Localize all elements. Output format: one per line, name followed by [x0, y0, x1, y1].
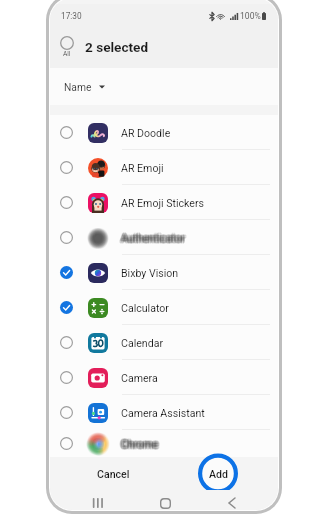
staticText: Chrome — [123, 437, 161, 449]
staticText: Chrome — [119, 437, 157, 449]
button[interactable]: Camera Assistant — [50, 395, 278, 430]
staticText: Authenticator — [121, 231, 185, 243]
button[interactable]: Add — [198, 457, 238, 490]
staticText: Camera — [121, 372, 158, 384]
button[interactable]: Calculator — [50, 290, 278, 325]
button[interactable]: AR Emoji Stickers — [50, 185, 278, 220]
staticText: Chrome — [120, 438, 158, 450]
staticText: Authenticator — [120, 234, 184, 246]
staticText: Chrome — [122, 436, 160, 448]
staticText: Chrome — [120, 439, 158, 451]
staticText: Chrome — [123, 437, 161, 449]
staticText: Authenticator — [120, 231, 184, 243]
staticText: Authenticator — [120, 232, 184, 244]
staticText: Authenticator — [121, 231, 185, 243]
staticText: Authenticator — [121, 234, 185, 246]
staticText: Authenticator — [120, 231, 184, 243]
staticText: Authenticator — [120, 233, 184, 245]
staticText: Chrome — [123, 439, 161, 451]
staticText: Authenticator — [122, 233, 186, 245]
staticText: Chrome — [119, 439, 157, 451]
staticText: Cancel — [97, 468, 130, 480]
staticText: Authenticator — [122, 232, 186, 244]
staticText: Authenticator — [120, 234, 184, 246]
staticText: All — [63, 50, 71, 58]
staticText: Chrome — [123, 438, 161, 450]
staticText: Authenticator — [119, 233, 183, 245]
staticText: Chrome — [122, 440, 160, 452]
staticText: Chrome — [120, 437, 158, 449]
button[interactable]: Cancel — [82, 460, 144, 488]
button[interactable]: AR Emoji — [50, 150, 278, 185]
button[interactable]: Bixby Vision — [50, 255, 278, 290]
staticText: Authenticator — [122, 233, 186, 245]
staticText: Authenticator — [121, 233, 185, 245]
staticText: Authenticator — [123, 233, 187, 245]
staticText: Name — [64, 81, 92, 93]
staticText: Authenticator — [122, 233, 186, 245]
staticText: Authenticator — [122, 230, 186, 242]
staticText: Chrome — [122, 440, 160, 452]
staticText: Chrome — [122, 437, 160, 449]
button[interactable]: AR Doodle — [50, 115, 278, 150]
staticText: Chrome — [119, 438, 157, 450]
staticText: Chrome — [122, 438, 160, 450]
staticText: Authenticator — [120, 232, 184, 244]
button[interactable]: Select all — [58, 37, 76, 59]
staticText: Authenticator — [120, 230, 184, 242]
staticText: Chrome — [119, 437, 157, 449]
staticText: Chrome — [120, 436, 158, 448]
button[interactable]: Chrome — [50, 430, 278, 457]
staticText: Chrome — [120, 438, 158, 450]
staticText: Chrome — [122, 439, 160, 451]
staticText: Chrome — [120, 436, 158, 448]
button[interactable]: Recent apps — [83, 490, 111, 510]
staticText: Authenticator — [122, 232, 186, 244]
staticText: Authenticator — [119, 233, 183, 245]
staticText: Chrome — [122, 437, 160, 449]
staticText: Chrome — [121, 440, 159, 452]
staticText: Authenticator — [123, 232, 187, 244]
staticText: Add — [209, 468, 228, 480]
staticText: Camera Assistant — [121, 407, 205, 419]
staticText: Chrome — [120, 440, 158, 452]
staticText: Authenticator — [122, 234, 186, 246]
staticText: Chrome — [120, 437, 158, 449]
staticText: Authenticator — [122, 230, 186, 242]
staticText: Authenticator — [122, 231, 186, 243]
staticText: Authenticator — [120, 231, 184, 243]
button[interactable]: Camera — [50, 360, 278, 395]
staticText: Authenticator — [120, 231, 184, 243]
staticText: Authenticator — [121, 230, 185, 242]
staticText: Authenticator — [121, 233, 185, 245]
staticText: Chrome — [121, 439, 159, 451]
staticText: Authenticator — [121, 232, 185, 244]
button[interactable]: Home — [151, 490, 179, 510]
staticText: Authenticator — [119, 232, 183, 244]
staticText: Chrome — [120, 437, 158, 449]
staticText: Authenticator — [123, 231, 187, 243]
staticText: Authenticator — [123, 232, 187, 244]
staticText: Chrome — [121, 436, 159, 448]
staticText: Chrome — [122, 439, 160, 451]
staticText: AR Doodle — [121, 127, 171, 139]
staticText: Chrome — [120, 439, 158, 451]
staticText: Chrome — [120, 440, 158, 452]
staticText: Chrome — [122, 437, 160, 449]
staticText: Authenticator — [122, 234, 186, 246]
staticText: 100% — [240, 11, 261, 21]
staticText: Authenticator — [123, 233, 187, 245]
staticText: Calculator — [121, 302, 169, 314]
staticText: Chrome — [119, 439, 157, 451]
button[interactable]: Name — [64, 81, 105, 93]
staticText: Calendar — [121, 337, 164, 349]
staticText: Chrome — [122, 436, 160, 448]
staticText: Authenticator — [120, 233, 184, 245]
staticText: Chrome — [121, 437, 159, 449]
staticText: Chrome — [123, 439, 161, 451]
staticText: Authenticator — [122, 231, 186, 243]
staticText: AR Emoji Stickers — [121, 197, 204, 209]
button[interactable]: Back — [218, 490, 246, 510]
button[interactable]: Calendar — [50, 325, 278, 360]
button[interactable]: Authenticator — [50, 220, 278, 255]
